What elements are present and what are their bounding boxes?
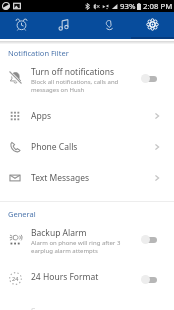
button[interactable]: Toggle xyxy=(141,73,157,84)
staticText: 24 Hours Format xyxy=(31,271,99,283)
button[interactable]: Earplugs xyxy=(86,12,130,39)
staticText: Notification Filter xyxy=(8,48,69,58)
button[interactable]: Alarms xyxy=(0,12,43,39)
staticText: Apps xyxy=(31,110,153,122)
staticText: General xyxy=(8,209,36,219)
staticText: Snooze xyxy=(31,306,59,310)
staticText: 93% xyxy=(120,1,136,12)
button[interactable]: Turn off notifications xyxy=(0,60,174,100)
staticText: 2:08 PM xyxy=(143,1,173,12)
button[interactable]: 24 xyxy=(0,259,174,288)
button[interactable]: Toggle xyxy=(141,234,157,245)
button[interactable]: Phone Calls xyxy=(0,131,174,162)
staticText: Block all notifications, calls and messa… xyxy=(31,78,119,94)
button[interactable]: Apps xyxy=(0,100,174,131)
button[interactable]: Toggle xyxy=(141,274,157,285)
button[interactable]: Backup Alarm xyxy=(0,223,174,259)
staticText: 24 xyxy=(12,275,19,282)
staticText: Backup Alarm xyxy=(31,227,87,239)
button[interactable]: Text Messages xyxy=(0,162,174,193)
staticText: Phone Calls xyxy=(31,141,153,153)
button[interactable]: Settings xyxy=(130,12,174,39)
staticText: Alarm on phone will ring after 3 earplug… xyxy=(31,239,121,255)
staticText: Text Messages xyxy=(31,172,153,184)
staticText: Turn off notifications xyxy=(31,66,115,78)
button[interactable]: Music xyxy=(43,12,86,39)
